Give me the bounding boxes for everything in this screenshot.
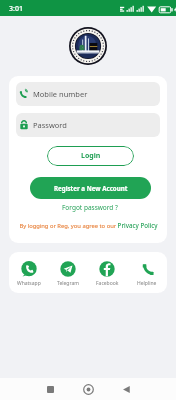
- other: App logo: [69, 27, 107, 65]
- button[interactable]: By logging or Reg, you agree to our Priv…: [19, 221, 158, 229]
- other: Helpline: [139, 261, 155, 277]
- staticText: Telegram: [57, 280, 79, 287]
- button[interactable]: Register a New Account: [30, 177, 151, 199]
- button[interactable]: Home: [69, 378, 107, 400]
- staticText: Facebook: [96, 280, 119, 287]
- button[interactable]: Whatsapp: [9, 261, 48, 287]
- staticText: Register a New Account: [54, 184, 128, 192]
- staticText: Login: [81, 151, 101, 161]
- staticText: Forgot password ?: [62, 203, 118, 212]
- button[interactable]: Recent apps: [31, 378, 69, 400]
- button[interactable]: Password: [16, 113, 160, 137]
- staticText: 3:01: [9, 4, 23, 14]
- button[interactable]: Forgot password ?: [60, 201, 120, 214]
- button[interactable]: Login: [47, 146, 134, 166]
- staticText: Password: [33, 120, 67, 130]
- button[interactable]: Mobile number: [16, 82, 160, 106]
- staticText: Whatsapp: [17, 280, 41, 287]
- button[interactable]: Telegram: [48, 261, 87, 287]
- button[interactable]: Helpline: [127, 261, 167, 287]
- button[interactable]: Facebook: [87, 261, 127, 287]
- staticText: Helpline: [137, 280, 157, 287]
- button[interactable]: Back: [107, 378, 145, 400]
- staticText: Mobile number: [33, 89, 88, 99]
